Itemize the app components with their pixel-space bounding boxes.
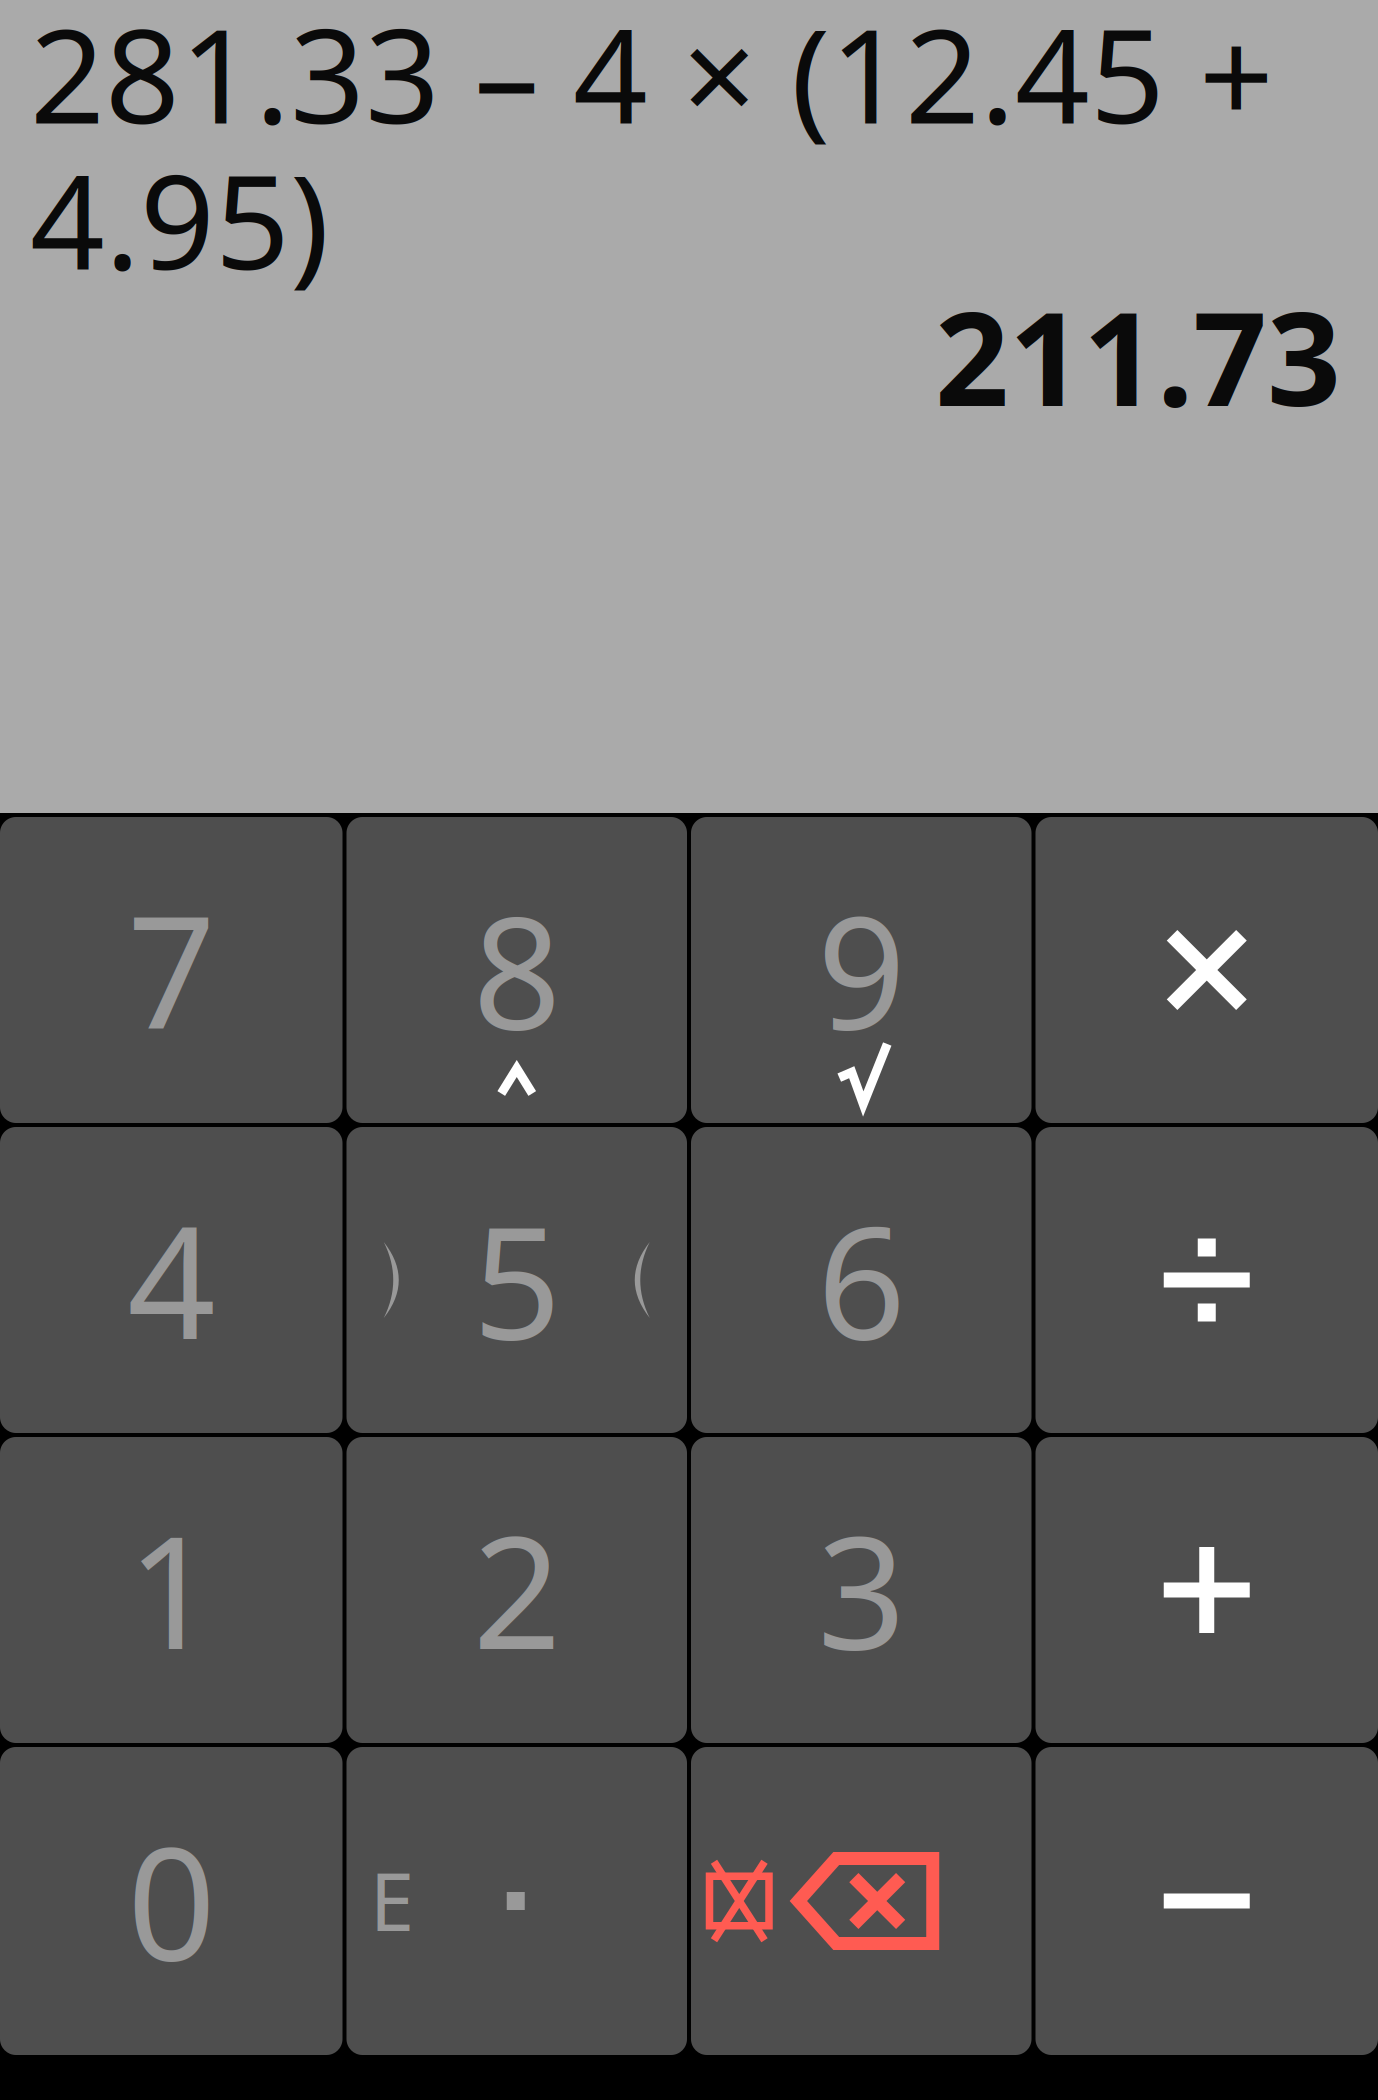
button[interactable]: decimal point bbox=[344, 1745, 689, 2055]
staticText: 8 bbox=[473, 866, 561, 1072]
staticText: 9 bbox=[817, 866, 905, 1072]
staticText: 3 bbox=[817, 1486, 905, 1692]
button[interactable]: minus bbox=[1033, 1745, 1378, 2055]
button[interactable]: 3 bbox=[689, 1435, 1033, 1745]
staticText: E bbox=[370, 1847, 414, 1953]
button[interactable]: multiply bbox=[1033, 815, 1378, 1125]
button[interactable]: 5 bbox=[344, 1125, 689, 1435]
staticText: 2 bbox=[473, 1486, 561, 1692]
button[interactable]: 4 bbox=[0, 1125, 344, 1435]
staticText: 281.33 – 4 × (12.45 + bbox=[30, 0, 1274, 159]
staticText: 1 bbox=[127, 1486, 215, 1692]
button[interactable]: 6 bbox=[689, 1125, 1033, 1435]
staticText: 0 bbox=[127, 1797, 215, 2003]
button[interactable]: plus bbox=[1033, 1435, 1378, 1745]
staticText: 6 bbox=[817, 1176, 905, 1382]
button[interactable]: 9 bbox=[689, 815, 1033, 1125]
staticText: 4.95) bbox=[30, 132, 329, 305]
button[interactable]: 0 bbox=[0, 1745, 344, 2055]
button[interactable]: delete bbox=[689, 1745, 1033, 2055]
staticText: 5 bbox=[473, 1176, 561, 1382]
button[interactable]: 8 bbox=[344, 815, 689, 1125]
staticText: 211.73 bbox=[935, 270, 1341, 442]
button[interactable]: divide bbox=[1033, 1125, 1378, 1435]
staticText: 7 bbox=[127, 866, 215, 1072]
button[interactable]: 2 bbox=[344, 1435, 689, 1745]
button[interactable]: 7 bbox=[0, 815, 344, 1125]
staticText: 4 bbox=[127, 1176, 215, 1382]
button[interactable]: 1 bbox=[0, 1435, 344, 1745]
